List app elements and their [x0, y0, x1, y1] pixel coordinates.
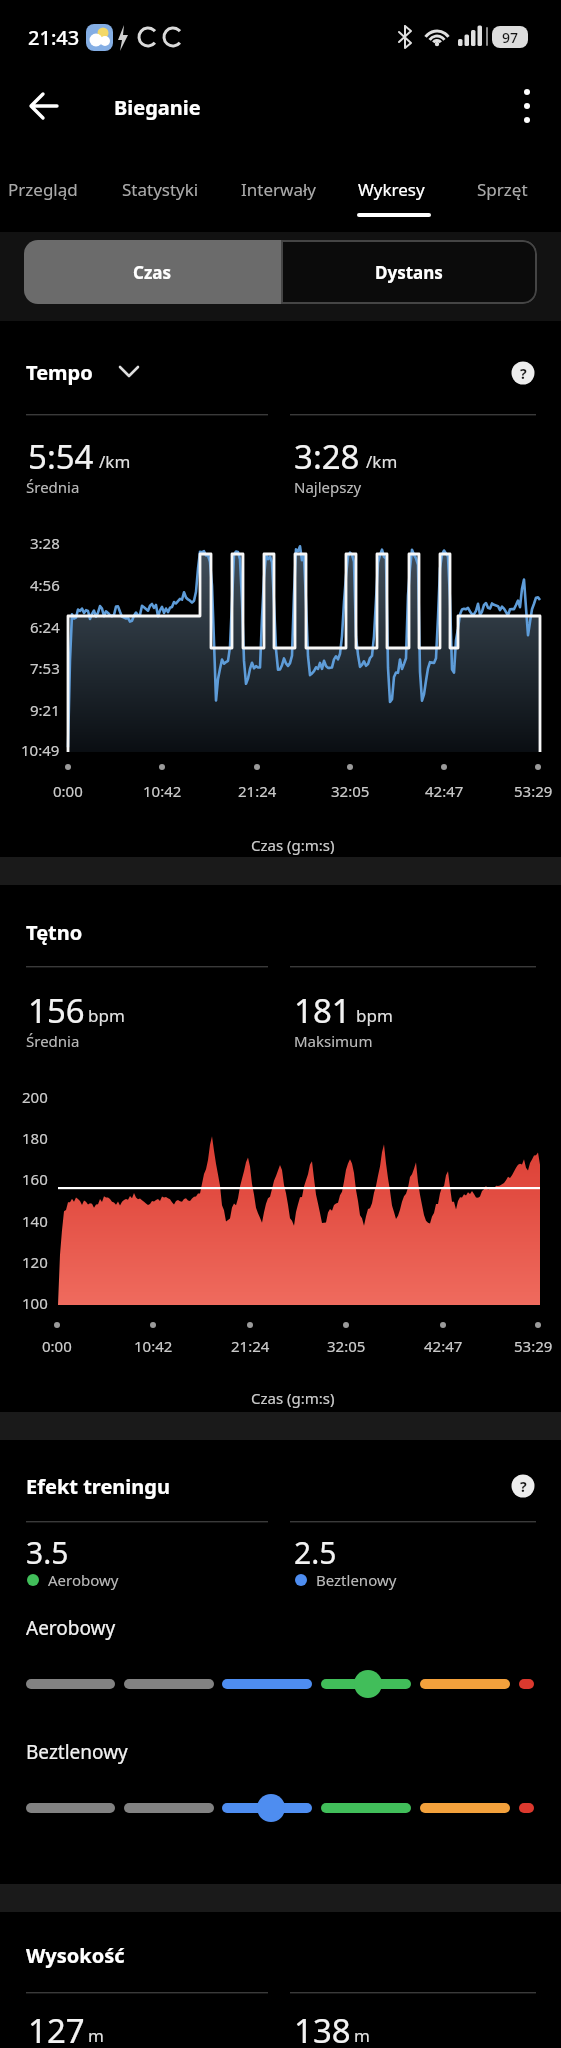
button[interactable]: Tempo [26, 347, 93, 397]
button[interactable]: Przegląd [8, 164, 78, 214]
staticText: 5:54 [28, 434, 94, 479]
staticText: 138 [294, 2008, 351, 2048]
button[interactable]: Czas [24, 240, 281, 304]
button[interactable]: Wykresy [358, 164, 425, 214]
staticText: Wykresy [358, 178, 425, 201]
button[interactable]: Statystyki [122, 164, 199, 214]
staticText: 181 [294, 988, 351, 1033]
staticText: 53:29 [514, 1336, 553, 1356]
staticText: 0:00 [42, 1336, 72, 1356]
staticText: 140 [22, 1211, 48, 1231]
button[interactable]: ? [509, 359, 537, 387]
staticText: Bieganie [114, 94, 201, 121]
staticText: /km [366, 450, 398, 473]
staticText: 97 [502, 28, 519, 47]
staticText: 3.5 [26, 1532, 69, 1573]
staticText: Czas [133, 261, 172, 284]
staticText: Maksimum [294, 1031, 373, 1051]
staticText: Statystyki [122, 178, 199, 201]
staticText: 32:05 [331, 781, 370, 801]
staticText: ? [520, 364, 527, 383]
staticText: Aerobowy [26, 1615, 116, 1641]
button[interactable]: Interwały [241, 164, 316, 214]
staticText: 200 [22, 1087, 48, 1107]
staticText: m [88, 2024, 104, 2047]
staticText: Średnia [26, 477, 80, 497]
staticText: Beztlenowy [316, 1570, 397, 1590]
staticText: 10:49 [21, 740, 60, 760]
staticText: 160 [22, 1169, 48, 1189]
button[interactable] [505, 82, 549, 126]
button[interactable]: Sprzęt [477, 164, 528, 214]
staticText: Dystans [375, 261, 443, 284]
staticText: 10:42 [134, 1336, 173, 1356]
staticText: 120 [22, 1252, 48, 1272]
staticText: bpm [356, 1004, 393, 1027]
staticText: ? [520, 1477, 527, 1496]
staticText: Aerobowy [48, 1570, 119, 1590]
staticText: 2.5 [294, 1532, 337, 1573]
button[interactable] [0, 1792, 561, 1824]
staticText: Średnia [26, 1031, 80, 1051]
staticText: 156 [28, 988, 85, 1033]
staticText: Interwały [241, 178, 316, 201]
staticText: 6:24 [30, 617, 60, 637]
staticText: Najlepszy [294, 477, 362, 497]
staticText: 21:24 [231, 1336, 270, 1356]
staticText: Beztlenowy [26, 1739, 128, 1765]
staticText: Wysokość [26, 1942, 125, 1969]
staticText: 0:00 [53, 781, 83, 801]
staticText: 4:56 [30, 575, 60, 595]
staticText: 42:47 [424, 1336, 463, 1356]
staticText: 32:05 [327, 1336, 366, 1356]
staticText: 53:29 [514, 781, 553, 801]
staticText: 42:47 [425, 781, 464, 801]
staticText: 180 [22, 1128, 48, 1148]
button[interactable]: Dystans [281, 240, 537, 304]
staticText: 9:21 [30, 700, 60, 720]
staticText: 3:28 [30, 533, 60, 553]
button[interactable]: ? [509, 1472, 537, 1500]
staticText: Przegląd [8, 178, 78, 201]
staticText: 21:43 [28, 24, 80, 51]
staticText: Czas (g:m:s) [251, 1388, 335, 1408]
staticText: Tętno [26, 919, 83, 946]
staticText: Tempo [26, 359, 93, 386]
staticText: Czas (g:m:s) [251, 835, 335, 855]
button[interactable] [0, 1668, 561, 1700]
staticText: 100 [22, 1293, 48, 1313]
staticText: 21:24 [238, 781, 277, 801]
staticText: bpm [88, 1004, 125, 1027]
staticText: 3:28 [294, 434, 360, 479]
button[interactable] [20, 82, 68, 130]
staticText: Efekt treningu [26, 1473, 170, 1500]
staticText: Sprzęt [477, 178, 528, 201]
staticText: /km [99, 450, 131, 473]
staticText: 10:42 [143, 781, 182, 801]
staticText: 7:53 [30, 658, 60, 678]
staticText: m [354, 2024, 370, 2047]
staticText: 127 [28, 2008, 85, 2048]
